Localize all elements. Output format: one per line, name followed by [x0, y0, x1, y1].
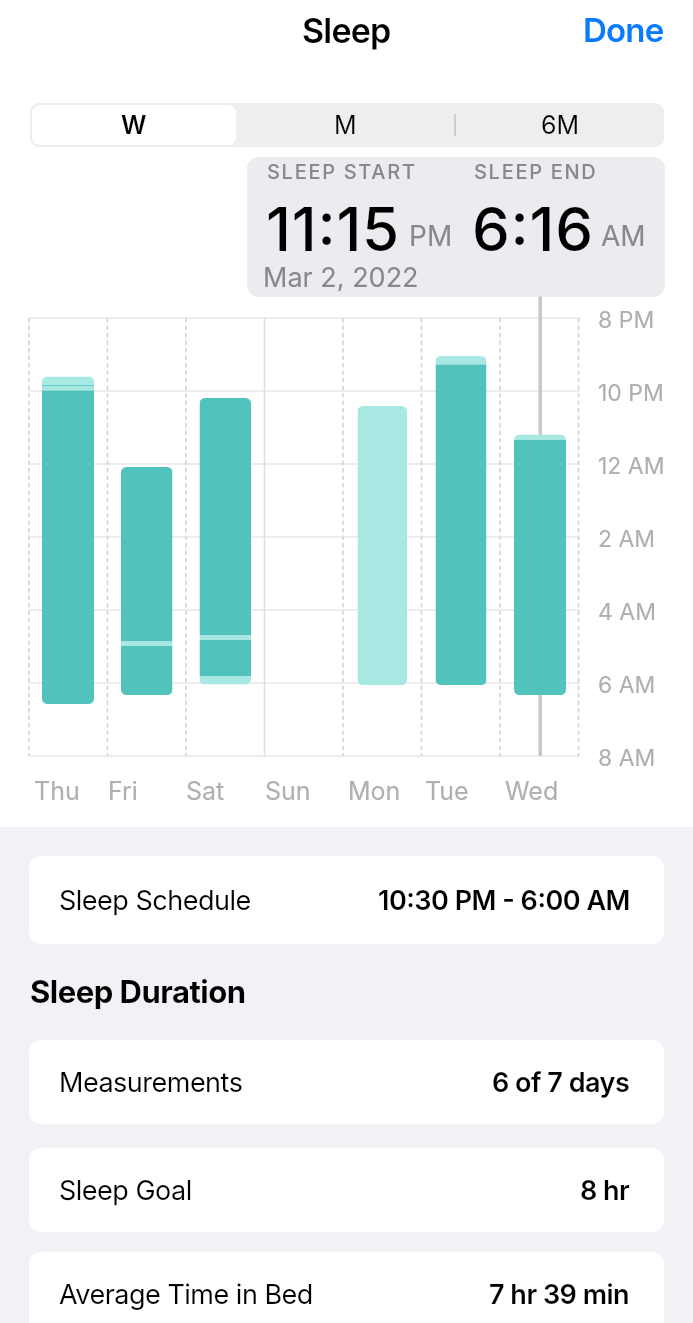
- staticText: Tue: [425, 776, 469, 806]
- staticText: Sat: [186, 776, 225, 806]
- staticText: Done: [583, 10, 664, 50]
- button[interactable]: Sleep Schedule: [29, 856, 664, 944]
- staticText: 4 AM: [598, 598, 656, 626]
- staticText: SLEEP START: [267, 160, 417, 184]
- staticText: W: [121, 110, 147, 140]
- staticText: Fri: [108, 776, 138, 806]
- button[interactable]: Measurements: [29, 1040, 664, 1124]
- staticText: AM: [601, 219, 646, 253]
- staticText: Sleep Duration: [30, 973, 246, 1011]
- staticText: Mon: [348, 776, 401, 806]
- staticText: Thu: [34, 776, 80, 806]
- staticText: SLEEP END: [474, 160, 598, 184]
- staticText: Sleep Goal: [59, 1174, 192, 1207]
- staticText: 6M: [541, 110, 580, 140]
- staticText: 8 AM: [598, 744, 656, 772]
- staticText: M: [334, 110, 357, 140]
- staticText: 10 PM: [598, 379, 664, 407]
- button[interactable]: 6M: [456, 105, 664, 145]
- staticText: Sleep: [302, 10, 391, 50]
- staticText: Sun: [265, 776, 311, 806]
- staticText: Sleep Schedule: [59, 884, 251, 917]
- staticText: 6 AM: [598, 671, 656, 699]
- staticText: Average Time in Bed: [59, 1278, 313, 1311]
- staticText: 8 PM: [598, 306, 655, 334]
- button[interactable]: Done: [554, 7, 664, 53]
- staticText: 6 of 7 days: [492, 1066, 630, 1099]
- button[interactable]: Sleep Goal: [29, 1148, 664, 1232]
- button[interactable]: Average Time in Bed: [29, 1252, 664, 1323]
- staticText: 6:16: [472, 193, 594, 259]
- staticText: 7 hr 39 min: [489, 1278, 630, 1311]
- staticText: Wed: [505, 776, 559, 806]
- staticText: 8 hr: [580, 1174, 630, 1207]
- staticText: 12 AM: [598, 452, 665, 480]
- staticText: 10:30 PM - 6:00 AM: [378, 884, 630, 917]
- staticText: PM: [409, 219, 453, 253]
- button[interactable]: [32, 105, 236, 145]
- staticText: Mar 2, 2022: [263, 261, 419, 291]
- staticText: 2 AM: [598, 525, 656, 553]
- button[interactable]: M: [236, 105, 454, 145]
- staticText: 11:15: [266, 193, 400, 259]
- staticText: Measurements: [59, 1066, 243, 1099]
